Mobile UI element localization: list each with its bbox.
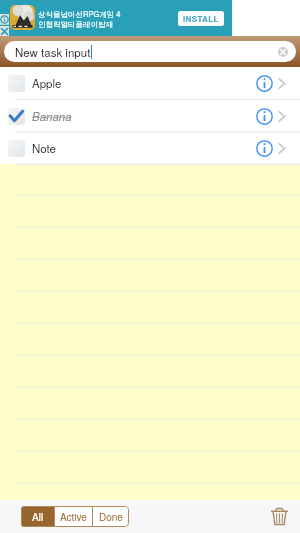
button[interactable]: Clear text — [278, 47, 288, 57]
button[interactable]: New task input — [4, 41, 296, 62]
button[interactable]: Active — [55, 506, 92, 527]
staticText: New task input — [15, 44, 91, 60]
staticText: Banana — [32, 108, 72, 124]
button[interactable]: Details — [278, 142, 291, 155]
button[interactable]: Delete all — [268, 505, 291, 528]
staticText: Apple — [32, 75, 62, 91]
staticText: 인협력멀티플레이탑재 — [38, 20, 113, 29]
staticText: Done — [99, 510, 123, 524]
button[interactable]: Info — [256, 140, 273, 157]
button[interactable]: Ad info — [0, 14, 9, 37]
button[interactable]: INSTALL — [178, 11, 224, 26]
button[interactable]: Info — [256, 108, 273, 125]
button[interactable] — [0, 0, 232, 36]
staticText: Active — [60, 510, 87, 524]
staticText: 상식을넘어선RPG게임 4 — [38, 8, 121, 19]
staticText: All — [32, 510, 44, 524]
button[interactable]: Note — [0, 132, 300, 164]
staticText: INSTALL — [183, 13, 219, 24]
button[interactable]: Apple — [0, 67, 300, 99]
button[interactable]: All — [21, 506, 54, 527]
staticText: Note — [32, 140, 57, 156]
button[interactable]: Done — [93, 506, 129, 527]
button[interactable]: Details — [278, 77, 291, 90]
button[interactable]: Info — [256, 75, 273, 92]
button[interactable]: Details — [278, 110, 291, 123]
button[interactable]: Banana — [0, 100, 300, 132]
